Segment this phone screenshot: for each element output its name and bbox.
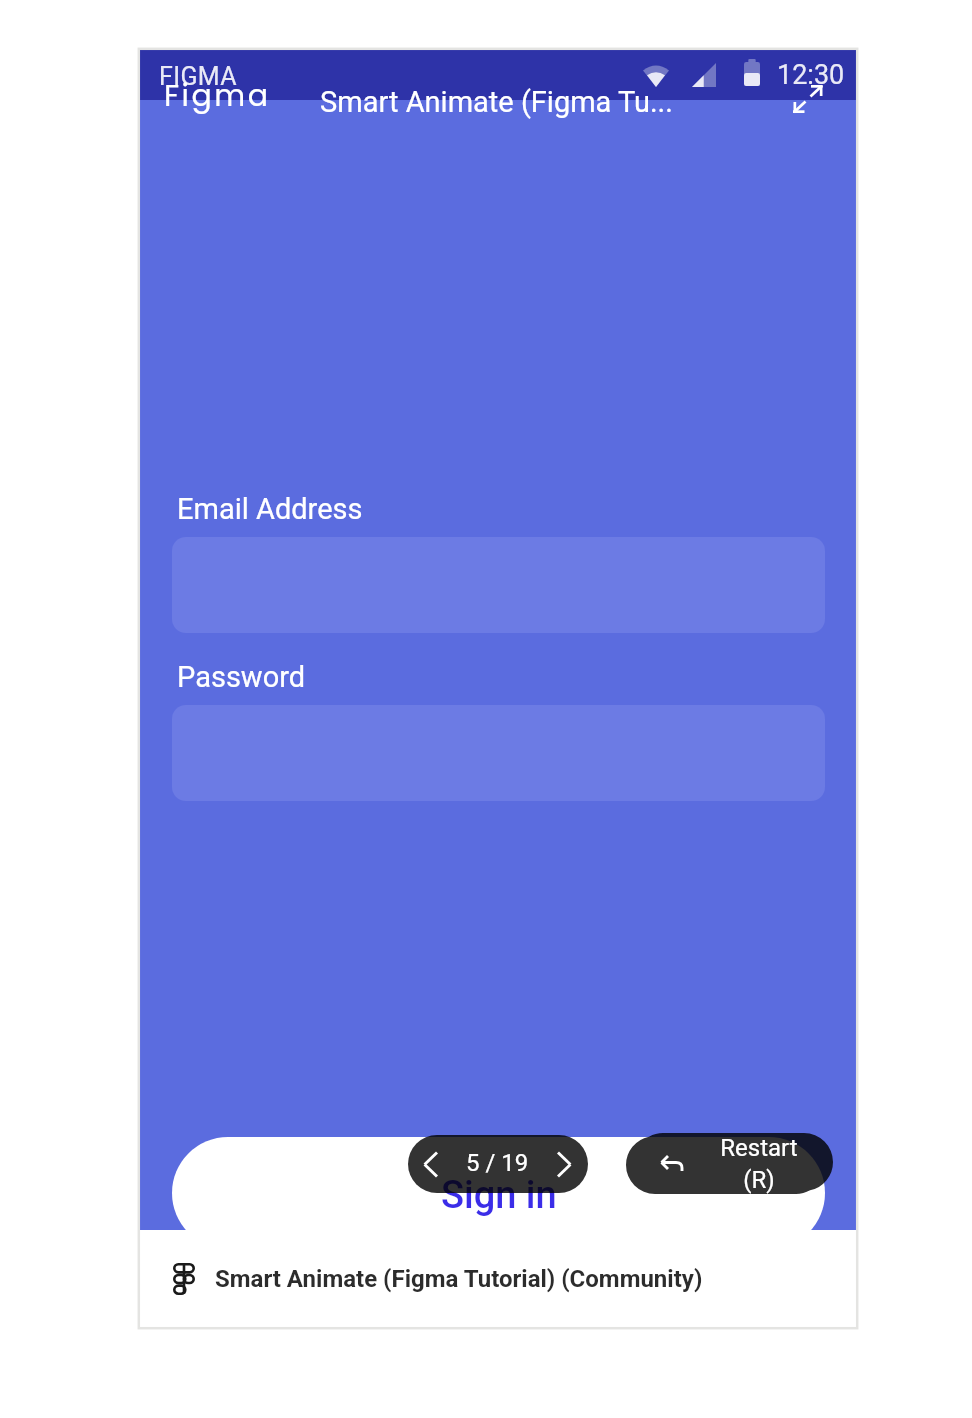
staticText: Smart Animate (Figma Tutorial) (Communit…	[215, 1265, 703, 1293]
button[interactable]: Smart Animate (Figma Tutorial) (Communit…	[140, 1230, 856, 1327]
staticText: 5 / 19	[466, 1149, 529, 1177]
staticText: 12:30	[777, 59, 845, 91]
button[interactable]: Restart	[626, 1136, 825, 1194]
staticText: Email Address	[177, 492, 363, 526]
staticText: Sign in	[441, 1173, 557, 1218]
staticText: FIGMA	[159, 62, 238, 91]
button[interactable]: Toggle fullscreen	[776, 67, 840, 131]
staticText: Password	[177, 660, 306, 694]
button[interactable]: 5 / 19	[408, 1135, 588, 1193]
staticText: Figma	[164, 75, 271, 117]
staticText: Smart Animate (Figma Tu...	[320, 85, 673, 119]
staticText: Restart (R)	[720, 1134, 798, 1194]
button[interactable]: Sign in	[172, 1137, 825, 1249]
